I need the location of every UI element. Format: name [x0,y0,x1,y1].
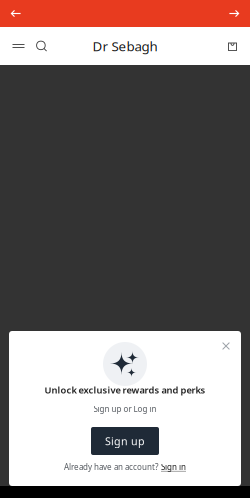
button[interactable]: Back [2,0,30,27]
button[interactable]: Sign in [161,462,186,472]
button[interactable]: Menu [6,27,31,65]
button[interactable]: Close [217,337,235,355]
button[interactable]: Sign up [91,427,159,455]
button[interactable]: Forward [220,0,248,27]
staticText: Sign up [105,434,145,448]
staticText: Sign in [161,462,186,472]
staticText: Sign up or Log in [93,404,156,414]
staticText: Already have an account? [64,462,158,472]
staticText: Dr Sebagh [92,37,157,55]
staticText: Unlock exclusive rewards and perks [44,384,205,396]
button[interactable]: Search [29,27,54,65]
button[interactable]: Shopping bag [220,27,245,65]
